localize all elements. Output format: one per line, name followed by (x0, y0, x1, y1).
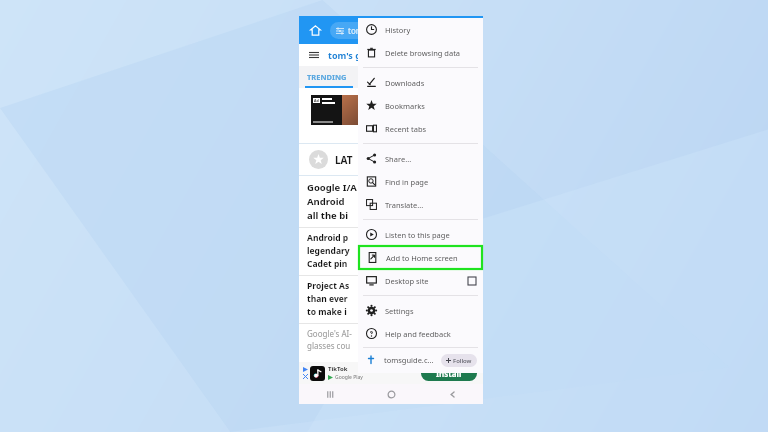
staticText: Android p (307, 232, 349, 244)
button[interactable]: Home (306, 21, 324, 39)
button[interactable]: TRENDING (305, 72, 349, 82)
staticText: LAT (335, 153, 353, 167)
staticText: Translate... (385, 200, 424, 210)
button[interactable]: Back (422, 384, 483, 404)
button[interactable]: Desktop site (358, 269, 483, 292)
staticText: tom's guide (328, 49, 381, 61)
button[interactable]: Google's AI- (299, 328, 483, 352)
staticText: legendary (307, 245, 350, 257)
staticText: all the bi (307, 209, 349, 222)
staticText: Listen to this page (385, 230, 450, 240)
button[interactable]: Listen to this page (358, 223, 483, 246)
button[interactable]: tomsguide.c... (358, 350, 483, 370)
staticText: Delete browsing data (385, 48, 461, 58)
staticText: glasses cou (307, 340, 351, 351)
staticText: Google Play (335, 374, 363, 381)
button[interactable]: Delete browsing data (358, 41, 483, 64)
staticText: Downloads (385, 78, 425, 88)
staticText: Help and feedback (385, 329, 451, 339)
button[interactable]: Add to Home screen (359, 246, 482, 269)
button[interactable]: Settings (358, 299, 483, 322)
button[interactable]: Translate... (358, 193, 483, 216)
staticText: Desktop site (385, 276, 429, 286)
button[interactable]: Google I/A (299, 181, 483, 223)
button[interactable]: Find in page (358, 170, 483, 193)
button[interactable]: Recent tabs (358, 117, 483, 140)
button[interactable]: Install (421, 366, 477, 381)
staticText: Project As (307, 280, 350, 292)
staticText: tomsguide.c... (384, 355, 434, 365)
staticText: Google I/A (307, 181, 357, 194)
staticText: than ever (307, 293, 348, 305)
button[interactable]: Follow (441, 354, 477, 367)
staticText: Cadet pin (307, 258, 348, 270)
button[interactable]: Share... (358, 147, 483, 170)
button[interactable]: Recents (299, 384, 361, 404)
staticText: Android (307, 195, 345, 208)
staticText: to make i (307, 306, 347, 318)
staticText: Bookmarks (385, 101, 425, 111)
button[interactable]: Home (361, 384, 422, 404)
staticText: tomsguide.com (348, 25, 407, 36)
staticText: Add to Home screen (386, 253, 458, 263)
button[interactable]: Android p (299, 232, 483, 271)
staticText: Ad (314, 98, 319, 103)
staticText: TikTok (328, 365, 348, 373)
button[interactable]: tomsguide.com (330, 22, 476, 39)
staticText: History (385, 25, 411, 35)
staticText: Settings (385, 306, 414, 316)
button[interactable]: Ad (311, 95, 369, 125)
staticText: Recent tabs (385, 124, 427, 134)
button[interactable]: Menu (307, 48, 321, 62)
staticText: Follow (453, 357, 472, 365)
staticText: Install (436, 368, 462, 379)
button[interactable]: Project As (299, 280, 483, 319)
button[interactable]: Downloads (358, 71, 483, 94)
button[interactable]: Help and feedback (358, 322, 483, 345)
staticText: Google's AI- (307, 328, 352, 339)
button[interactable]: History (358, 18, 483, 41)
button[interactable]: Bookmarks (358, 94, 483, 117)
staticText: Find in page (385, 177, 429, 187)
staticText: Share... (385, 154, 412, 164)
staticText: TRENDING (307, 72, 347, 82)
